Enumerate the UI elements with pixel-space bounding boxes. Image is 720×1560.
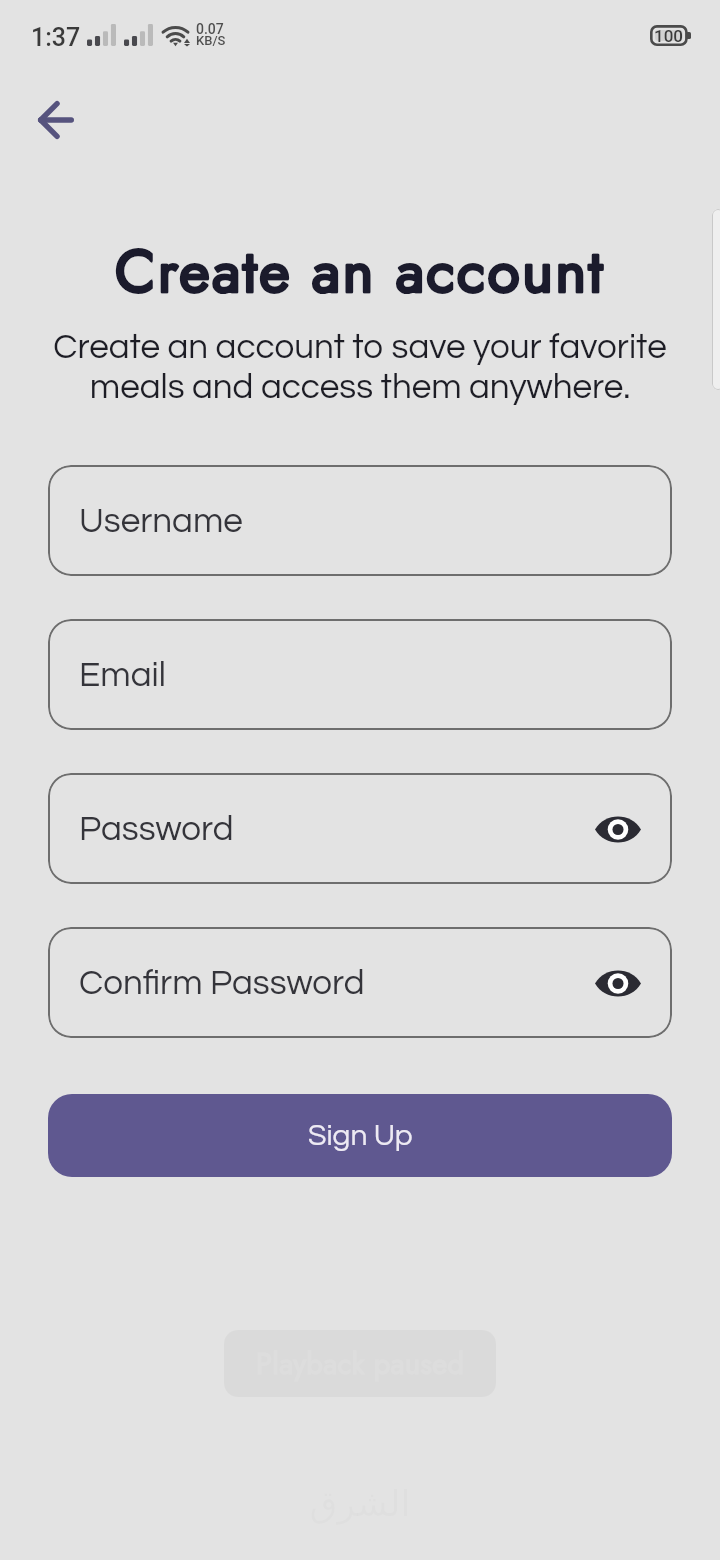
button[interactable]: Password xyxy=(48,773,672,884)
button[interactable]: Email xyxy=(48,619,672,730)
staticText: Create an account to save your favorite … xyxy=(26,329,694,405)
staticText: Confirm Password xyxy=(79,965,365,1001)
staticText: Create an account xyxy=(0,229,720,314)
staticText: 100 xyxy=(654,26,683,46)
staticText: Email xyxy=(79,657,166,693)
button[interactable]: Sign Up xyxy=(48,1094,672,1177)
staticText: 1:37 xyxy=(31,23,81,52)
staticText: 0.07 xyxy=(196,21,224,37)
button[interactable]: Back xyxy=(21,85,91,155)
staticText: Sign Up xyxy=(308,1120,413,1151)
button[interactable]: Username xyxy=(48,465,672,576)
staticText: Create an account xyxy=(0,229,720,314)
staticText: KB/S xyxy=(196,33,226,48)
staticText: Username xyxy=(79,503,243,539)
button[interactable]: Show password xyxy=(590,801,646,857)
staticText: Password xyxy=(79,811,234,847)
button[interactable]: Show password xyxy=(590,955,646,1011)
button[interactable]: Confirm Password xyxy=(48,927,672,1038)
